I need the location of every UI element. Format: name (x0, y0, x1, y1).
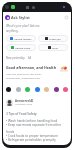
button[interactable]: More (38, 44, 68, 51)
staticText: • Wash hands before handling food (6, 119, 58, 123)
button[interactable]: App shortcut (25, 87, 30, 92)
staticText: New this afternoon: fast garlic (6, 72, 42, 75)
staticText: What's your plan? Ask me (6, 24, 40, 28)
button[interactable]: App shortcut (35, 87, 40, 92)
staticText: • Cook foods to proper temperature (6, 134, 58, 138)
staticText: Ask Stylist (11, 15, 30, 20)
button[interactable]: App shortcut (63, 87, 68, 92)
staticText: 100 others 24/50 (15, 103, 33, 106)
button[interactable]: App shortcut (16, 87, 21, 92)
button[interactable]: Create Job (38, 35, 68, 42)
button[interactable]: App shortcut (54, 87, 59, 92)
staticText: Create Job (49, 37, 61, 40)
staticText: 3 Tips of Food Safety: (6, 112, 38, 116)
button[interactable]: Upload Video (6, 44, 36, 51)
button[interactable]: Close (63, 14, 69, 20)
staticText: More (52, 46, 58, 49)
staticText: Upload Images (14, 37, 32, 40)
staticText: anything. (6, 29, 19, 33)
button[interactable]: Upload Images (6, 35, 36, 42)
staticText: New yesterday (6, 56, 25, 60)
staticText: All (28, 56, 32, 60)
staticText: Upload Video (15, 46, 31, 49)
button[interactable]: App shortcut (6, 87, 11, 92)
staticText: • Keep raw meats separate from other foo… (6, 123, 68, 134)
button[interactable]: App shortcut (44, 87, 49, 92)
staticText: • Refrigerate perishables promptly (6, 138, 56, 142)
staticText: Answered AI (15, 99, 34, 103)
button[interactable]: Assistant (5, 15, 10, 20)
staticText: enlightened, predictable and (6, 76, 40, 79)
staticText: Good afternoon, and Health (6, 65, 56, 70)
